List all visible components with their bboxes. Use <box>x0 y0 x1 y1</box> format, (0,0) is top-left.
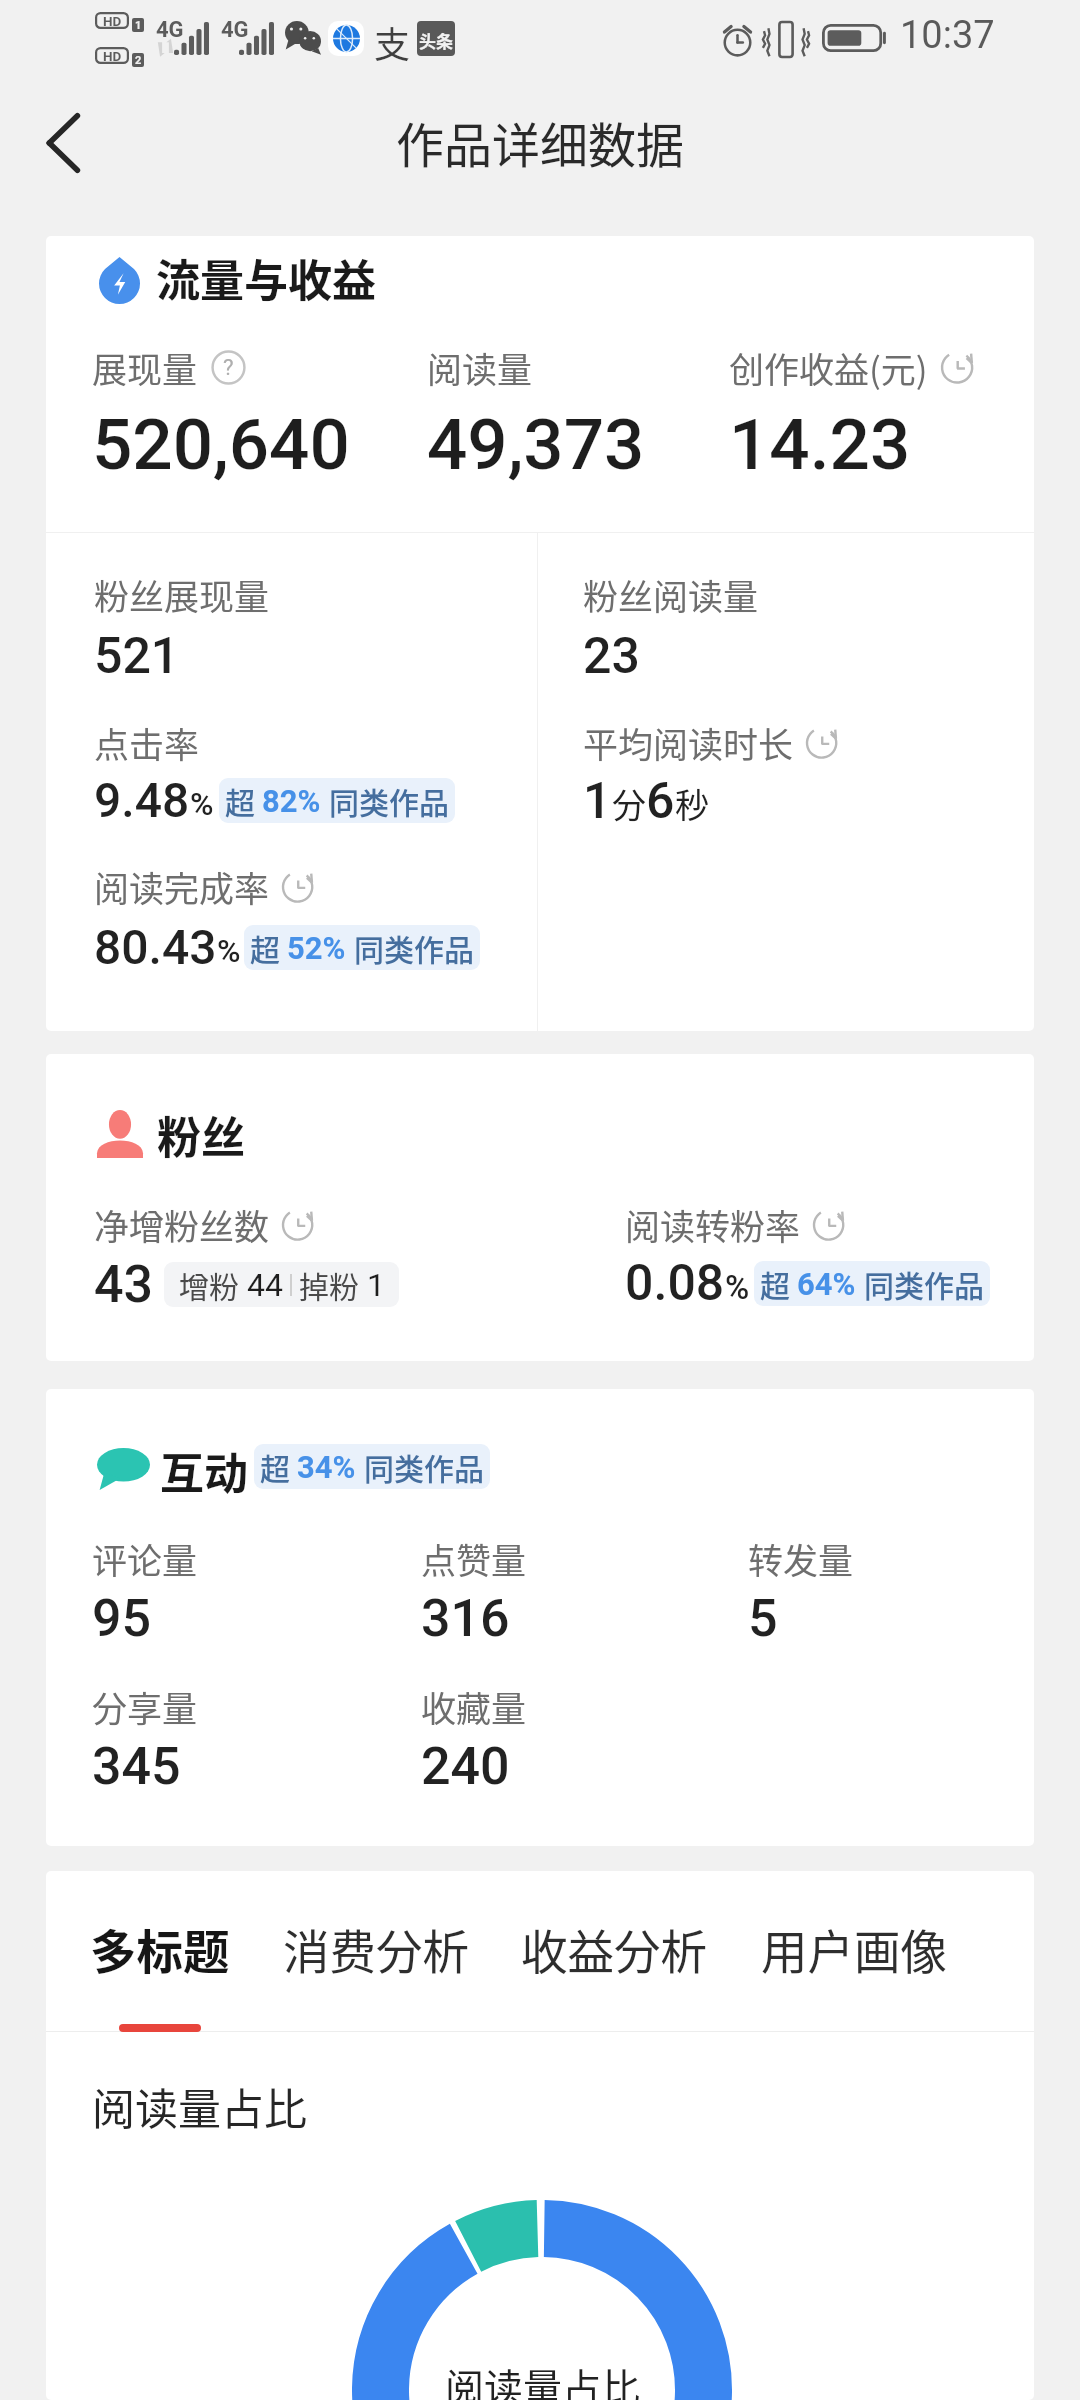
staticText: 展现量 <box>92 342 198 393</box>
staticText: 34% <box>297 1449 356 1485</box>
staticText: 分 <box>612 779 646 828</box>
staticText: 6 <box>646 772 675 831</box>
staticText: 用户画像 <box>761 1915 947 1982</box>
staticText: 2 <box>135 54 142 67</box>
staticText: 240 <box>421 1736 510 1797</box>
staticText: 64% <box>797 1266 856 1302</box>
button[interactable]: 收益分析 <box>521 1915 707 1982</box>
staticText: 粉丝展现量 <box>94 569 270 620</box>
staticText: 点赞量 <box>421 1533 527 1584</box>
staticText: 1 <box>135 19 142 32</box>
staticText: 流量与收益 <box>156 246 376 310</box>
staticText: 520,640 <box>92 403 350 486</box>
staticText: 82% <box>262 783 321 819</box>
staticText: 345 <box>92 1736 181 1797</box>
button[interactable]: 消费分析 <box>283 1915 469 1982</box>
staticText: % <box>217 932 241 970</box>
staticText: 同类作品 <box>364 1445 484 1488</box>
staticText: 秒 <box>675 779 709 828</box>
staticText: HD <box>103 13 122 29</box>
staticText: 同类作品 <box>354 926 474 969</box>
staticText: 互动 <box>160 1439 248 1503</box>
staticText: 增粉 <box>179 1263 239 1306</box>
staticText: 头条 <box>419 28 453 50</box>
staticText: 掉粉 <box>299 1263 359 1306</box>
staticText: 5 <box>748 1588 778 1649</box>
staticText: 14.23 <box>729 403 911 486</box>
staticText: 超 <box>760 1262 790 1305</box>
staticText: 1 <box>367 1266 385 1304</box>
staticText: 0.08 <box>625 1254 725 1313</box>
staticText: 阅读量占比 <box>92 2075 307 2137</box>
button[interactable]: 用户画像 <box>761 1915 947 1982</box>
staticText: 49,373 <box>427 403 645 486</box>
staticText: 超 <box>250 926 280 969</box>
staticText: 80.43 <box>94 919 217 975</box>
staticText: 52% <box>287 930 346 966</box>
staticText: 转发量 <box>748 1533 854 1584</box>
staticText: 4G <box>221 17 249 43</box>
staticText: 作品详细数据 <box>396 107 685 177</box>
staticText: 消费分析 <box>283 1915 469 1982</box>
staticText: 净增粉丝数 <box>94 1199 270 1250</box>
staticText: ? <box>223 354 234 380</box>
staticText: % <box>190 785 214 823</box>
staticText: 同类作品 <box>329 779 449 822</box>
staticText: 超 <box>260 1445 290 1488</box>
staticText: 粉丝阅读量 <box>583 569 759 620</box>
staticText: 支 <box>374 16 411 68</box>
staticText: 点击率 <box>94 717 200 768</box>
staticText: 同类作品 <box>864 1262 984 1305</box>
staticText: 分享量 <box>92 1681 198 1732</box>
staticText: 超 <box>225 779 255 822</box>
staticText: 4G <box>156 17 184 43</box>
staticText: 创作收益(元) <box>729 342 928 393</box>
staticText: 评论量 <box>92 1533 198 1584</box>
staticText: 收益分析 <box>521 1915 707 1982</box>
staticText: 316 <box>421 1588 510 1649</box>
staticText: 收藏量 <box>421 1681 527 1732</box>
staticText: 43 <box>94 1254 154 1315</box>
staticText: 23 <box>583 627 640 686</box>
staticText: 95 <box>92 1588 152 1649</box>
staticText: 521 <box>94 627 180 686</box>
staticText: 阅读完成率 <box>94 861 270 912</box>
staticText: 阅读量 <box>427 342 533 393</box>
staticText: 44 <box>247 1266 283 1304</box>
button[interactable]: 多标题 <box>90 1915 230 1982</box>
staticText: 10:37 <box>900 13 995 58</box>
staticText: 阅读转粉率 <box>625 1199 801 1250</box>
staticText: 粉丝 <box>157 1103 245 1167</box>
staticText: HD <box>103 48 122 64</box>
staticText: 1 <box>583 772 612 831</box>
staticText: 阅读量占比 <box>445 2357 641 2400</box>
staticText: 平均阅读时长 <box>583 717 794 768</box>
button[interactable]: Back <box>18 98 108 188</box>
staticText: % <box>725 1268 750 1307</box>
staticText: 多标题 <box>90 1915 230 1982</box>
staticText: 9.48 <box>94 772 190 828</box>
